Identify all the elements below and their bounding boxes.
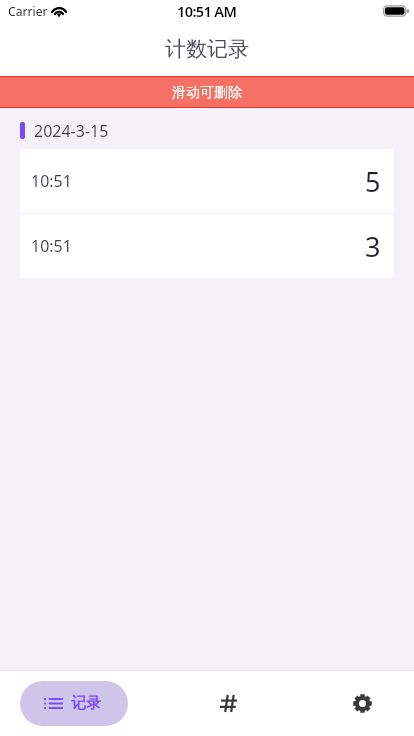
staticText: 5 xyxy=(365,163,381,200)
staticText: Carrier xyxy=(8,3,48,20)
staticText: 3 xyxy=(365,228,381,265)
staticText: 10:51 AM xyxy=(177,1,237,21)
staticText: 滑动可删除 xyxy=(172,84,242,102)
button[interactable]: Counter xyxy=(183,671,275,736)
staticText: 记录 xyxy=(71,694,101,713)
button[interactable]: 10:51 xyxy=(20,214,394,278)
staticText: 10:51 xyxy=(31,170,72,192)
button[interactable]: Settings xyxy=(316,671,408,736)
staticText: 10:51 xyxy=(31,235,72,257)
button[interactable]: 记录 xyxy=(20,681,128,726)
staticText: 计数记录 xyxy=(165,36,249,62)
button[interactable]: 10:51 xyxy=(20,149,394,213)
staticText: 2024-3-15 xyxy=(34,120,109,137)
